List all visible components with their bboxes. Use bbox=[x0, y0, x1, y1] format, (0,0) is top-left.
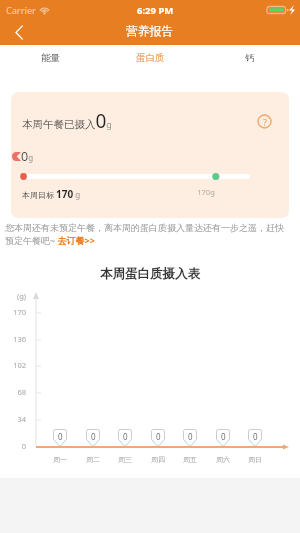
staticText: 周二 bbox=[81, 455, 105, 464]
staticText: 0g bbox=[21, 148, 34, 165]
staticText: 34 bbox=[0, 414, 26, 424]
staticText: 0 bbox=[156, 431, 161, 442]
staticText: 170g bbox=[193, 187, 219, 197]
staticText: 周三 bbox=[113, 455, 137, 464]
staticText: 68 bbox=[0, 387, 26, 397]
staticText: 本周目标 170 g bbox=[22, 187, 81, 201]
staticText: 0 bbox=[123, 431, 128, 442]
staticText: 营养报告 bbox=[126, 24, 174, 39]
button[interactable]: 钙 bbox=[200, 45, 300, 73]
staticText: 本周蛋白质摄入表 bbox=[0, 266, 300, 282]
staticText: 周六 bbox=[211, 455, 235, 464]
staticText: ? bbox=[263, 116, 267, 128]
staticText: 170 bbox=[0, 307, 26, 317]
staticText: 0 bbox=[253, 431, 258, 442]
staticText: 周四 bbox=[146, 455, 170, 464]
button[interactable]: 能量 bbox=[0, 45, 100, 73]
button[interactable]: Back bbox=[0, 20, 38, 45]
staticText: 0 bbox=[221, 431, 226, 442]
staticText: (g) bbox=[0, 291, 26, 301]
button[interactable]: Help bbox=[257, 114, 272, 129]
staticText: 本周午餐已摄入0g bbox=[22, 108, 112, 134]
staticText: 136 bbox=[0, 334, 26, 344]
staticText: 钙 bbox=[245, 52, 255, 64]
staticText: Carrier bbox=[6, 4, 36, 16]
staticText: 能量 bbox=[41, 52, 60, 64]
button[interactable]: 蛋白质 bbox=[100, 45, 200, 73]
staticText: 0 bbox=[58, 431, 63, 442]
staticText: 102 bbox=[0, 360, 26, 370]
staticText: 您本周还有未预定午餐，离本周的蛋白质摄入量达还有一步之遥，赶快预定午餐吧~ 去订… bbox=[5, 222, 288, 246]
staticText: 蛋白质 bbox=[136, 52, 165, 64]
staticText: 0 bbox=[0, 441, 26, 451]
staticText: 周日 bbox=[243, 455, 267, 464]
staticText: 周五 bbox=[178, 455, 202, 464]
staticText: 0 bbox=[188, 431, 193, 442]
staticText: 周一 bbox=[48, 455, 72, 464]
staticText: 0 bbox=[91, 431, 96, 442]
staticText: 6:29 PM bbox=[137, 4, 174, 17]
